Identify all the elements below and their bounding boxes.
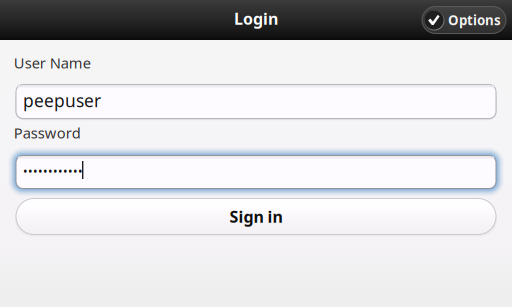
staticText: Sign in — [229, 206, 282, 227]
staticText: Login — [234, 8, 278, 29]
button[interactable]: Options — [422, 6, 506, 33]
staticText: User Name — [14, 53, 91, 72]
staticText: Options — [448, 11, 501, 29]
staticText: •••••••••••• — [23, 163, 83, 179]
staticText: peepuser — [23, 89, 101, 112]
button[interactable]: Sign in — [16, 198, 496, 234]
staticText: Password — [14, 123, 81, 142]
